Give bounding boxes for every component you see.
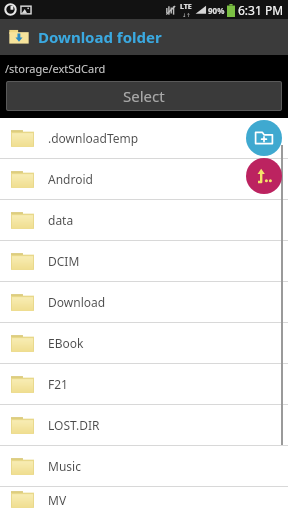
staticText: Select <box>123 86 165 106</box>
staticText: Download <box>48 294 106 310</box>
button[interactable]: Android <box>0 159 288 199</box>
staticText: Download folder <box>38 27 162 47</box>
staticText: MV <box>48 492 67 508</box>
staticText: DCIM <box>48 253 80 269</box>
button[interactable]: .downloadTemp <box>0 118 288 158</box>
button[interactable]: Download <box>0 282 288 322</box>
staticText: Music <box>48 458 81 474</box>
button[interactable]: DCIM <box>0 241 288 281</box>
button[interactable]: MV <box>0 487 288 512</box>
staticText: Android <box>48 171 93 187</box>
staticText: F21 <box>48 376 68 392</box>
button[interactable]: Download folder <box>0 19 288 55</box>
staticText: EBook <box>48 335 84 351</box>
button[interactable]: Music <box>0 446 288 486</box>
staticText: /storage/extSdCard <box>5 61 106 76</box>
staticText: 6:31 PM <box>238 2 284 18</box>
button[interactable]: LOST.DIR <box>0 405 288 445</box>
button[interactable]: New folder <box>246 120 282 156</box>
button[interactable]: Up to parent folder <box>246 158 282 194</box>
staticText: ↓↑ <box>182 12 191 18</box>
staticText: data <box>48 212 74 228</box>
staticText: LTE <box>180 2 192 12</box>
staticText: 90% <box>208 5 225 16</box>
staticText: .downloadTemp <box>48 130 139 146</box>
staticText: LOST.DIR <box>48 417 100 433</box>
button[interactable]: Select <box>6 81 282 111</box>
button[interactable]: data <box>0 200 288 240</box>
button[interactable]: EBook <box>0 323 288 363</box>
button[interactable]: F21 <box>0 364 288 404</box>
